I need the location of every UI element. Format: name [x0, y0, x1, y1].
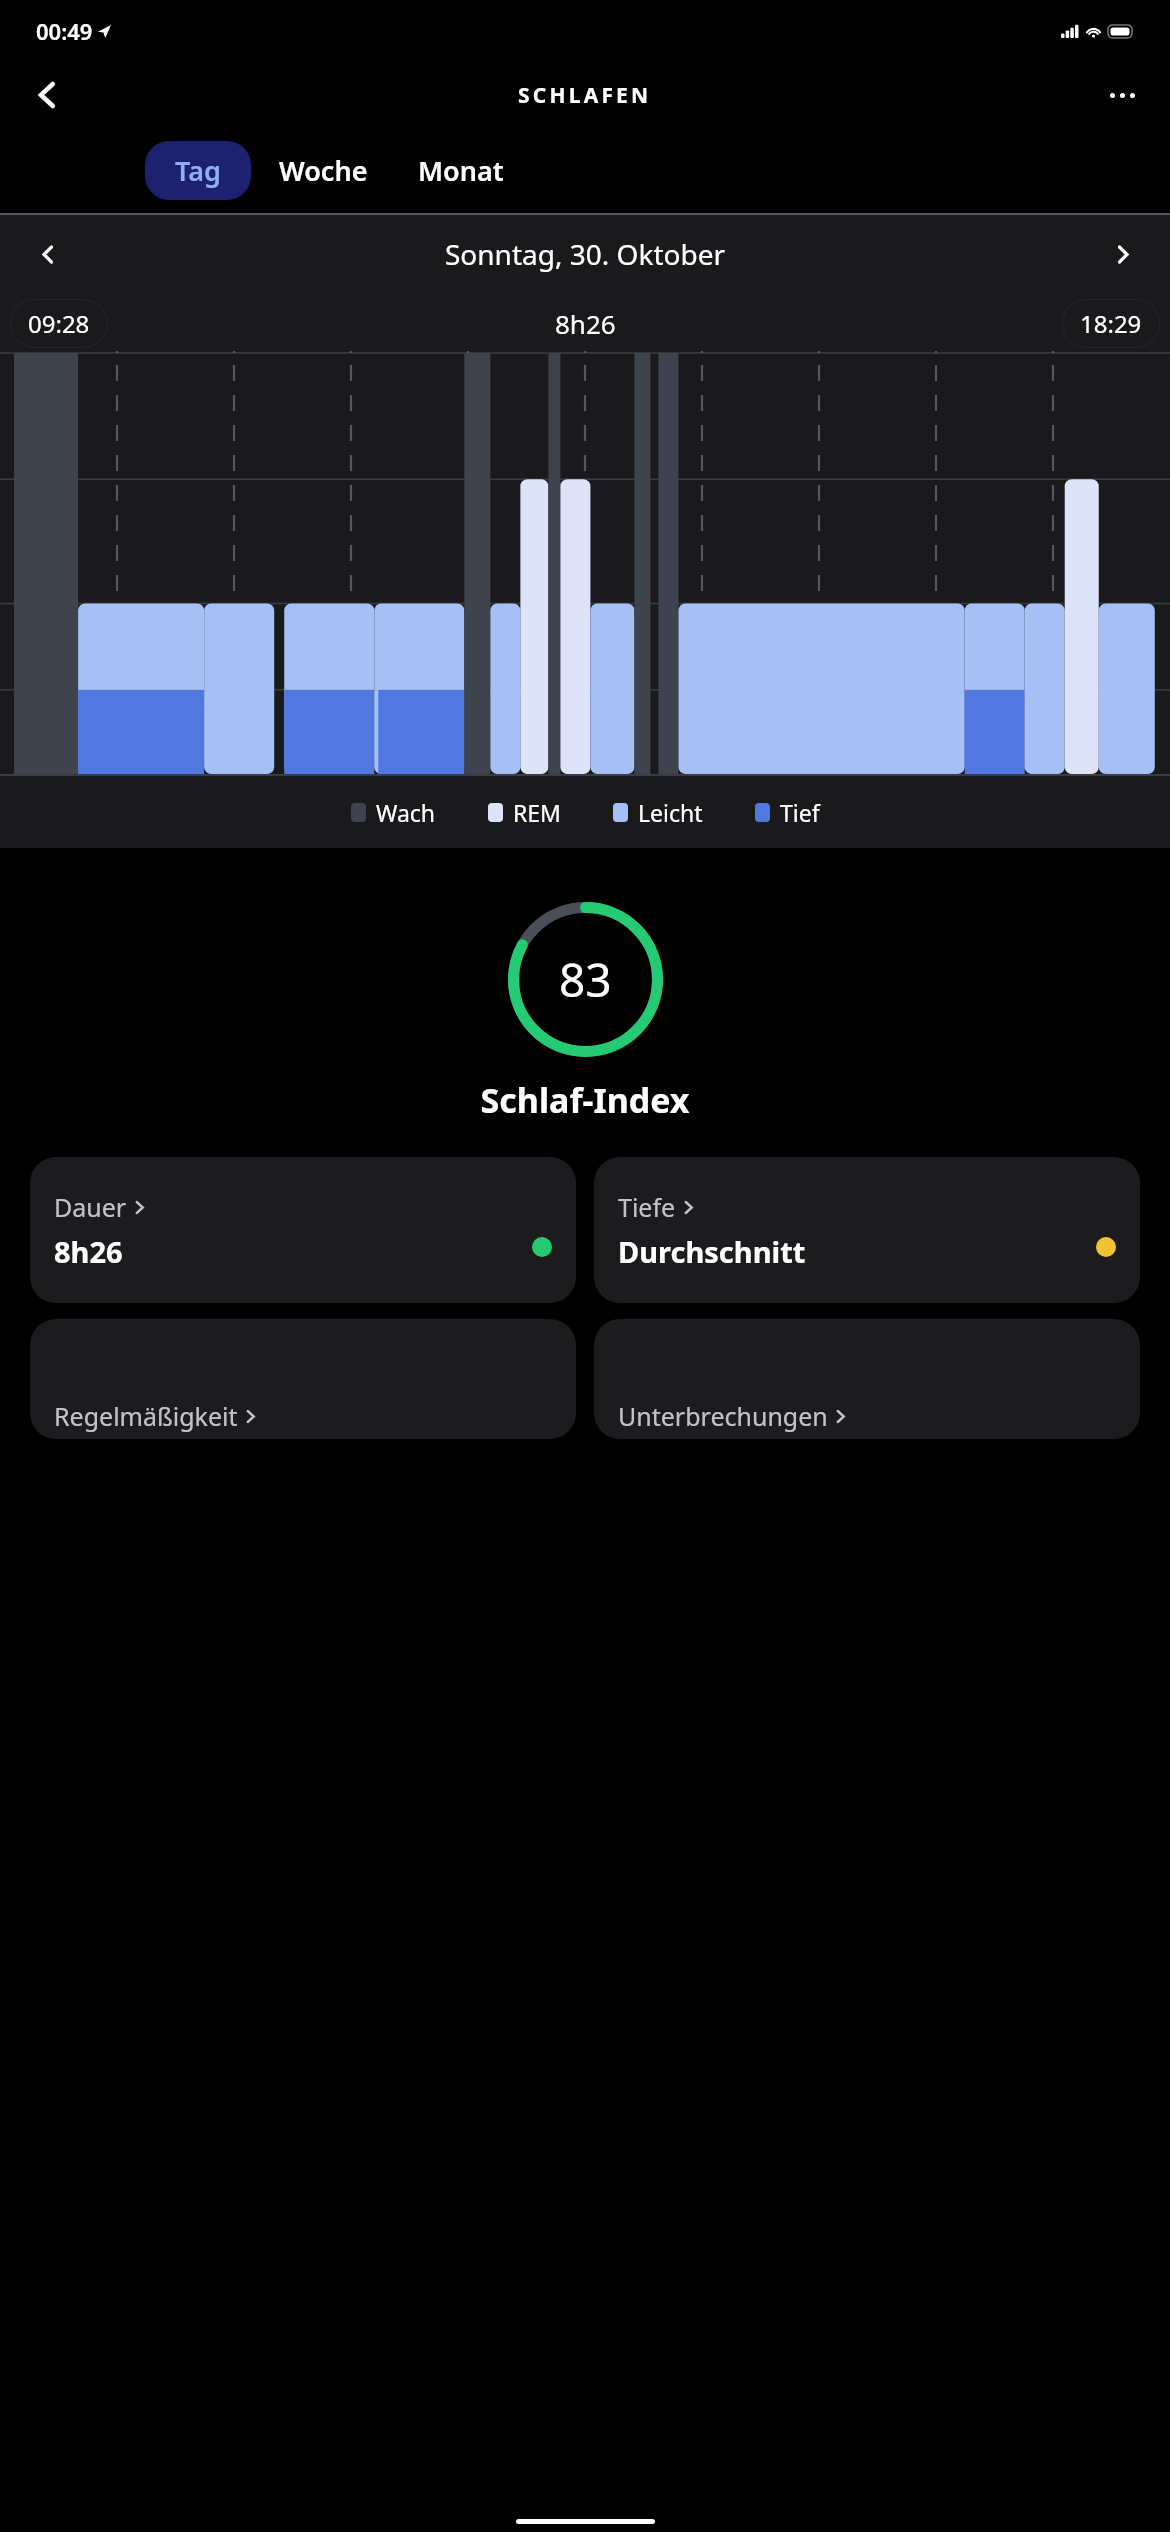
- staticText: Tag: [175, 152, 221, 189]
- staticText: 8h26: [555, 306, 616, 341]
- button[interactable]: Unterbrechungen: [594, 1319, 1140, 1439]
- button[interactable]: Regelmäßigkeit: [30, 1319, 576, 1439]
- button[interactable]: Previous day: [22, 228, 74, 280]
- staticText: Tiefe: [618, 1190, 676, 1224]
- staticText: Leicht: [638, 797, 703, 828]
- staticText: 18:29: [1080, 307, 1142, 340]
- button[interactable]: Next day: [1096, 228, 1148, 280]
- button[interactable]: Dauer: [30, 1157, 576, 1303]
- staticText: Woche: [279, 152, 368, 189]
- staticText: Schlaf-Index: [0, 1077, 1170, 1123]
- staticText: SCHLAFEN: [518, 81, 652, 110]
- staticText: Sonntag, 30. Oktober: [445, 235, 726, 273]
- staticText: Tief: [780, 797, 820, 828]
- staticText: 83: [559, 948, 612, 1011]
- staticText: 8h26: [54, 1232, 123, 1271]
- button[interactable]: More options: [1096, 69, 1148, 121]
- staticText: Monat: [418, 152, 504, 189]
- button[interactable]: Tiefe: [594, 1157, 1140, 1303]
- staticText: Durchschnitt: [618, 1232, 806, 1271]
- staticText: REM: [513, 797, 561, 828]
- staticText: Unterbrechungen: [618, 1399, 828, 1433]
- staticText: Dauer: [54, 1190, 127, 1224]
- button[interactable]: Back: [22, 69, 74, 121]
- button[interactable]: Monat: [396, 141, 526, 200]
- button[interactable]: Woche: [251, 141, 396, 200]
- button[interactable]: Tag: [145, 141, 251, 200]
- staticText: Wach: [376, 797, 436, 828]
- staticText: 09:28: [28, 307, 90, 340]
- staticText: Regelmäßigkeit: [54, 1399, 238, 1433]
- staticText: 00:49: [36, 16, 93, 46]
